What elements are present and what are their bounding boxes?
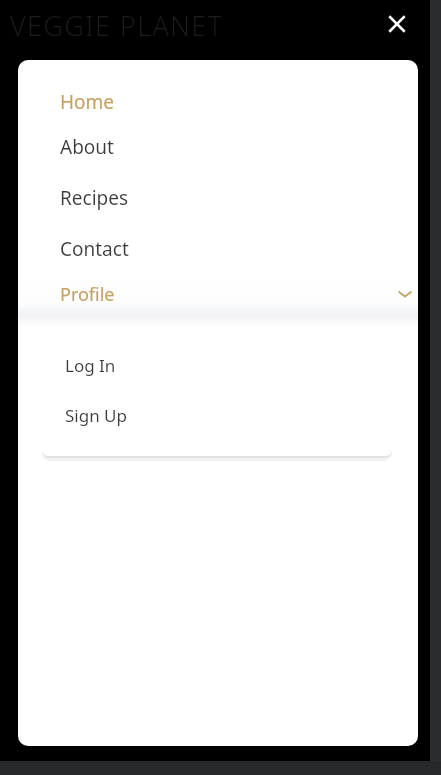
button[interactable]: Contact [18,223,418,274]
button[interactable]: Recipes [18,172,418,223]
staticText: About [60,134,114,160]
button[interactable]: Log In [42,346,392,384]
staticText: VEGGIE PLANET [10,7,224,44]
staticText: Home [60,89,115,115]
button[interactable]: Close menu [375,2,419,46]
staticText: Contact [60,236,129,262]
staticText: Recipes [60,185,129,211]
button[interactable]: Sign Up [42,396,392,434]
button[interactable]: Home [18,81,418,122]
button[interactable]: Profile [18,274,418,314]
staticText: Log In [65,354,116,377]
staticText: Sign Up [65,404,127,427]
button[interactable]: About [18,122,418,172]
staticText: Profile [60,282,115,307]
